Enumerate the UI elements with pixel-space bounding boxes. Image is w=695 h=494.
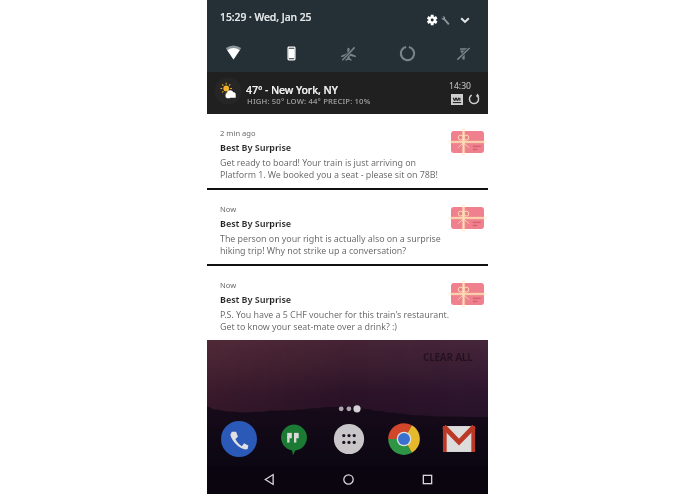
button[interactable]: CLEAR ALL xyxy=(412,347,483,367)
button[interactable]: Chrome xyxy=(386,421,422,457)
button[interactable]: Back xyxy=(255,465,284,494)
button[interactable]: Auto rotate xyxy=(392,38,422,68)
button[interactable]: Phone xyxy=(221,421,257,457)
button[interactable]: Hangouts xyxy=(276,421,312,457)
button[interactable]: Apps xyxy=(331,421,367,457)
button[interactable]: Now xyxy=(207,190,488,264)
button[interactable]: Flashlight xyxy=(448,38,478,68)
staticText: 15:29 · Wed, Jan 25 xyxy=(220,10,312,24)
button[interactable]: Wi-Fi xyxy=(218,38,248,68)
staticText: HIGH: 50° LOW: 44° PRECIP: 10% xyxy=(247,96,371,106)
button[interactable]: Expand quick settings xyxy=(453,8,477,32)
button[interactable]: Refresh xyxy=(468,93,480,105)
staticText: Best By Surprise xyxy=(220,141,292,153)
button[interactable]: 47° - New York, NY xyxy=(207,72,488,114)
button[interactable]: Settings xyxy=(420,8,458,32)
staticText: Best By Surprise xyxy=(220,293,292,305)
staticText: Now xyxy=(220,204,237,214)
button[interactable]: Now xyxy=(207,266,488,340)
staticText: The person on your right is actually als… xyxy=(220,232,454,256)
staticText: Best By Surprise xyxy=(220,217,292,229)
button[interactable]: Home xyxy=(334,465,363,494)
staticText: Now xyxy=(220,280,237,290)
staticText: 14:30 xyxy=(449,80,471,92)
button[interactable]: Recents xyxy=(413,465,442,494)
staticText: CLEAR ALL xyxy=(423,350,473,364)
button[interactable]: Airplane mode xyxy=(333,38,363,68)
staticText: Get ready to board! Your train is just a… xyxy=(220,156,454,180)
staticText: 47° - New York, NY xyxy=(246,83,338,97)
staticText: P.S. You have a 5 CHF voucher for this t… xyxy=(220,308,454,332)
button[interactable]: Cast screen xyxy=(276,38,306,68)
staticText: 2 min ago xyxy=(220,128,256,138)
button[interactable]: 2 min ago xyxy=(207,114,488,188)
button[interactable]: Gmail xyxy=(441,421,477,457)
